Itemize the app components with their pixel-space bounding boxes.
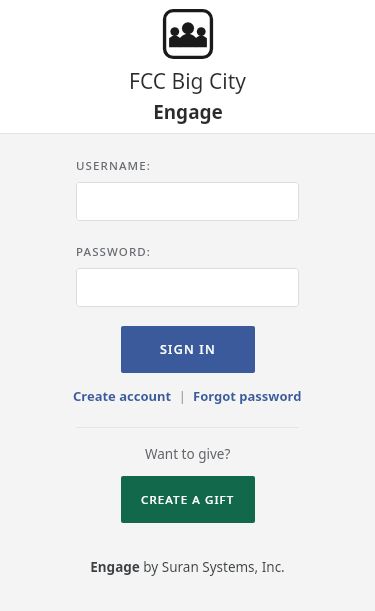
staticText: Create account — [73, 387, 172, 405]
staticText: | — [172, 387, 193, 405]
button[interactable]: Forgot password — [193, 387, 302, 405]
button[interactable]: Create account — [73, 387, 172, 405]
button[interactable]: SIGN IN — [121, 326, 255, 373]
button[interactable]: CREATE A GIFT — [121, 476, 255, 523]
button[interactable]: Text input field — [76, 268, 299, 307]
staticText: Engage — [153, 99, 223, 125]
staticText: USERNAME: — [76, 158, 151, 174]
staticText: SIGN IN — [160, 341, 216, 358]
staticText: Forgot password — [193, 387, 302, 405]
staticText: FCC Big City — [129, 67, 246, 96]
staticText: Want to give? — [145, 445, 231, 463]
staticText: CREATE A GIFT — [141, 492, 235, 508]
button[interactable]: Text input field — [76, 182, 299, 221]
staticText: PASSWORD: — [76, 244, 152, 260]
other: FCC Big City Engage logo — [161, 7, 215, 61]
staticText: Engage by Suran Systems, Inc. — [90, 558, 285, 576]
